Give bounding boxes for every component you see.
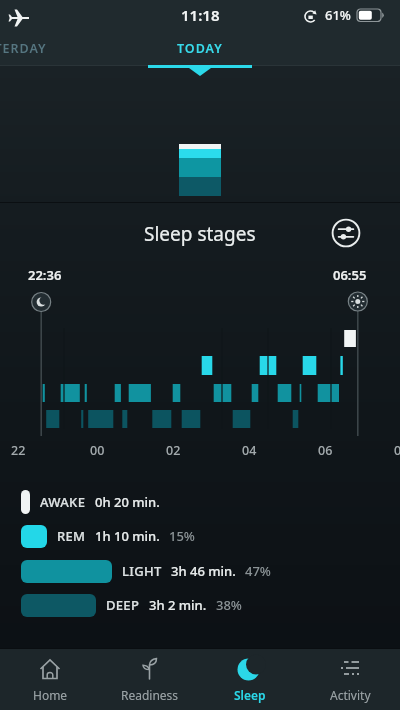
staticText: Activity xyxy=(330,687,371,703)
staticText: 06 xyxy=(318,442,333,459)
staticText: 02 xyxy=(166,442,181,459)
staticText: 22:36 xyxy=(28,266,62,284)
staticText: 3h 2 min. xyxy=(149,596,207,614)
staticText: Sleep stages xyxy=(144,221,256,247)
staticText: 38% xyxy=(216,596,242,614)
staticText: LIGHT xyxy=(122,562,162,580)
button[interactable]: YESTERDAY xyxy=(0,40,47,57)
staticText: REM xyxy=(57,527,86,545)
staticText: DEEP xyxy=(106,596,140,614)
staticText: Home xyxy=(33,687,68,703)
staticText: 1h 10 min. xyxy=(95,527,160,545)
staticText: 11:18 xyxy=(181,5,220,25)
staticText: TODAY xyxy=(177,40,223,57)
button[interactable] xyxy=(331,218,361,248)
staticText: 22 xyxy=(11,442,26,459)
button[interactable]: Activity xyxy=(300,649,400,710)
staticText: 0h 20 min. xyxy=(95,493,160,511)
button[interactable]: Home xyxy=(0,649,100,710)
staticText: 3h 46 min. xyxy=(171,562,236,580)
staticText: 06:55 xyxy=(333,266,367,284)
button[interactable]: Readiness xyxy=(100,649,200,710)
staticText: Readiness xyxy=(121,687,179,703)
button[interactable]: Sleep xyxy=(200,649,300,710)
staticText: YESTERDAY xyxy=(0,40,47,57)
staticText: Sleep xyxy=(234,687,266,703)
staticText: 08 xyxy=(394,442,400,459)
staticText: AWAKE xyxy=(40,493,86,511)
staticText: 00 xyxy=(90,442,105,459)
staticText: 47% xyxy=(245,562,271,580)
staticText: 04 xyxy=(242,442,257,459)
staticText: 61% xyxy=(325,6,351,24)
button[interactable]: TODAY xyxy=(177,40,223,57)
staticText: 15% xyxy=(169,527,195,545)
